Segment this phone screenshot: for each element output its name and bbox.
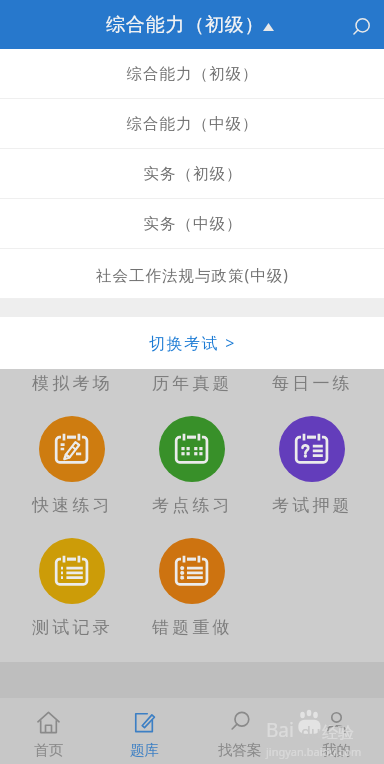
button[interactable]: 实务（中级） bbox=[0, 199, 384, 249]
button[interactable]: Search bbox=[339, 5, 383, 49]
staticText: 综合能力（中级） bbox=[126, 114, 258, 134]
button[interactable]: 我的 bbox=[288, 698, 384, 764]
button[interactable]: 切换考试 > bbox=[141, 328, 244, 358]
staticText: 我的 bbox=[322, 741, 351, 759]
button[interactable]: 首页 bbox=[0, 698, 96, 764]
staticText: 切换考试 > bbox=[149, 332, 236, 354]
button[interactable]: 历年真题 bbox=[132, 369, 252, 405]
button[interactable]: 综合能力（中级） bbox=[0, 99, 384, 149]
button[interactable]: 每日一练 bbox=[252, 369, 372, 405]
staticText: 错题重做 bbox=[152, 617, 233, 638]
staticText: 经验 bbox=[322, 723, 354, 743]
staticText: 社会工作法规与政策(中级) bbox=[96, 264, 289, 285]
button[interactable]: 题库 bbox=[96, 698, 192, 764]
staticText: 测试记录 bbox=[32, 617, 113, 638]
button[interactable]: 快速练习 bbox=[12, 409, 132, 527]
button[interactable]: 测试记录 bbox=[12, 531, 132, 649]
staticText: 找答案 bbox=[218, 741, 262, 759]
staticText: 考点练习 bbox=[152, 495, 233, 516]
button[interactable]: 考点练习 bbox=[132, 409, 252, 527]
staticText: 题库 bbox=[130, 741, 159, 759]
button[interactable]: 综合能力（初级） bbox=[0, 49, 384, 99]
staticText: 历年真题 bbox=[152, 373, 233, 394]
staticText: 实务（中级） bbox=[143, 214, 242, 234]
staticText: 首页 bbox=[34, 741, 63, 759]
staticText: 综合能力（初级） bbox=[126, 64, 258, 84]
button[interactable]: 社会工作法规与政策(中级) bbox=[0, 249, 384, 299]
staticText: 实务（初级） bbox=[143, 164, 242, 184]
staticText: 综合能力（初级） bbox=[106, 13, 265, 37]
staticText: jingyan.baidu.com bbox=[266, 744, 362, 759]
button[interactable]: 找答案 bbox=[192, 698, 288, 764]
button[interactable]: 考试押题 bbox=[252, 409, 372, 527]
staticText: Bai bbox=[266, 717, 294, 743]
button[interactable]: 模拟考场 bbox=[12, 369, 132, 405]
button[interactable]: 实务（初级） bbox=[0, 149, 384, 199]
staticText: 快速练习 bbox=[32, 495, 113, 516]
staticText: 考试押题 bbox=[272, 495, 353, 516]
button[interactable]: 综合能力（初级） bbox=[0, 0, 384, 49]
button[interactable]: 错题重做 bbox=[132, 531, 252, 649]
staticText: du bbox=[301, 721, 321, 743]
staticText: 每日一练 bbox=[272, 373, 353, 394]
staticText: 模拟考场 bbox=[32, 373, 113, 394]
